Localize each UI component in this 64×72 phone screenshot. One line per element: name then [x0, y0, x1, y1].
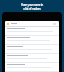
staticText: Have your name in a list of makers — [21, 3, 43, 10]
button[interactable] — [5, 36, 59, 45]
button[interactable] — [5, 45, 59, 54]
button[interactable] — [5, 54, 59, 63]
button[interactable] — [5, 27, 59, 36]
button[interactable] — [5, 63, 59, 72]
